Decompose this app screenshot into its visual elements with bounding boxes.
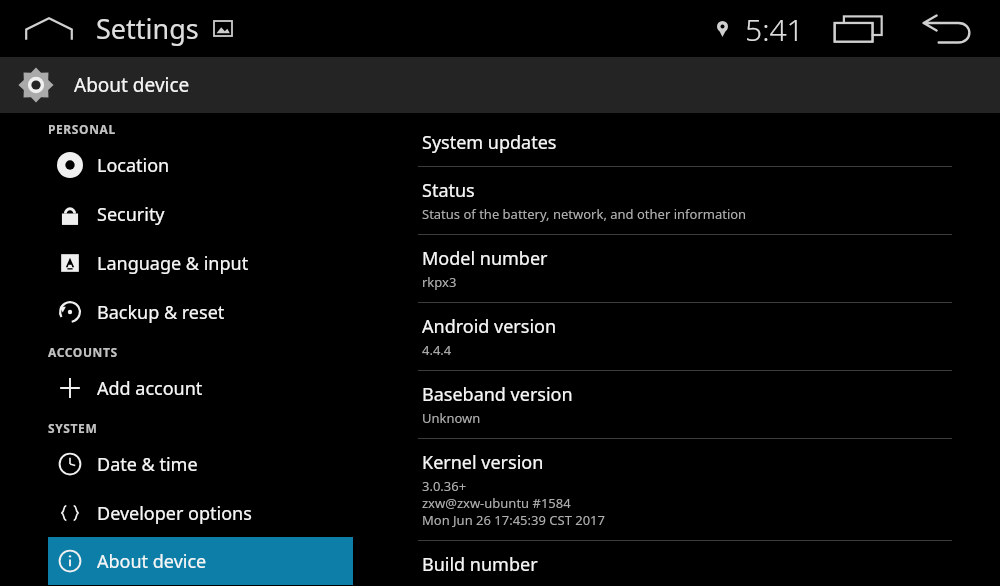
button[interactable]: Language & input <box>48 239 353 287</box>
staticText: Kernel version <box>422 450 544 475</box>
button[interactable]: About device <box>48 537 353 585</box>
staticText: PERSONAL <box>48 121 116 137</box>
staticText: 3.0.36+ zxw@zxw-ubuntu #1584 Mon Jun 26 … <box>422 477 605 529</box>
button[interactable]: Status <box>400 167 1000 234</box>
button[interactable]: Recent apps <box>826 9 892 49</box>
button[interactable]: Baseband version <box>400 371 1000 438</box>
staticText: Add account <box>97 376 203 401</box>
staticText: Backup & reset <box>97 300 225 325</box>
button[interactable]: Android version <box>400 303 1000 370</box>
button[interactable]: Backup & reset <box>48 288 353 336</box>
staticText: Android version <box>422 314 557 339</box>
button[interactable]: Add account <box>48 364 353 412</box>
button[interactable]: Model number <box>400 235 1000 302</box>
staticText: Date & time <box>97 452 198 477</box>
staticText: ACCOUNTS <box>48 344 118 360</box>
staticText: About device <box>97 549 207 574</box>
staticText: 4.4.4 <box>422 341 452 359</box>
button[interactable]: Back <box>914 7 980 51</box>
staticText: About device <box>74 72 190 98</box>
button[interactable]: System updates <box>400 119 1000 166</box>
button[interactable]: Developer options <box>48 489 353 537</box>
staticText: 5:41 <box>745 9 804 50</box>
staticText: Security <box>97 202 165 227</box>
staticText: Model number <box>422 246 548 271</box>
button[interactable]: Home <box>18 5 80 53</box>
staticText: Build number <box>422 552 538 575</box>
staticText: Status <box>422 178 475 203</box>
button[interactable]: Date & time <box>48 440 353 488</box>
staticText: Settings <box>96 10 199 47</box>
staticText: Unknown <box>422 409 481 427</box>
button[interactable]: About device <box>0 57 1000 113</box>
staticText: rkpx3 <box>422 273 457 291</box>
button[interactable]: Build number <box>400 541 1000 586</box>
button[interactable]: Location <box>48 141 353 189</box>
staticText: Status of the battery, network, and othe… <box>422 205 747 223</box>
staticText: Developer options <box>97 501 252 526</box>
staticText: SYSTEM <box>48 420 98 436</box>
staticText: Location <box>97 153 170 178</box>
staticText: Language & input <box>97 251 249 276</box>
staticText: Baseband version <box>422 382 573 407</box>
staticText: System updates <box>422 130 557 155</box>
button[interactable]: Security <box>48 190 353 238</box>
button[interactable]: Kernel version <box>400 439 1000 540</box>
